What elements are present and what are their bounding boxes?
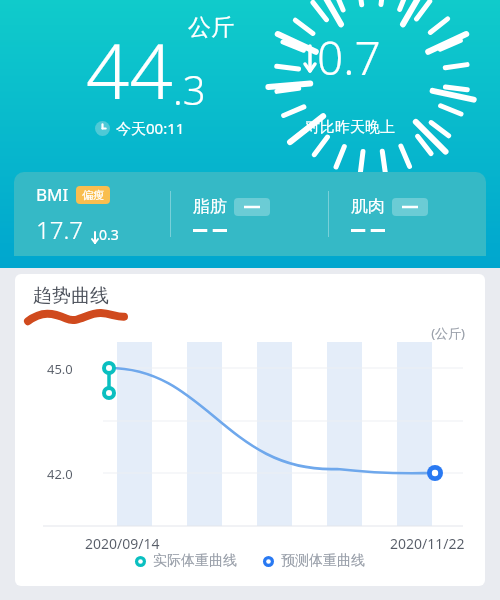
button[interactable]: BMI [14, 172, 486, 256]
staticText: 0.3 [99, 225, 119, 244]
staticText: 45.0 [47, 360, 73, 378]
staticText: 偏瘦 [82, 188, 104, 202]
staticText: 2020/11/22 [390, 534, 465, 552]
staticText: 今天00:11 [116, 118, 185, 138]
staticText: 对比昨天晚上 [305, 118, 395, 137]
staticText: 预测体重曲线 [281, 552, 365, 570]
staticText: 17.7 [36, 213, 83, 246]
staticText: 实际体重曲线 [153, 552, 237, 570]
staticText: 44 [86, 18, 173, 122]
staticText: 脂肪 [193, 196, 227, 217]
staticText: BMI [36, 183, 69, 206]
button[interactable]: 预测体重曲线 [263, 552, 365, 570]
button[interactable]: 实际体重曲线 [135, 552, 237, 570]
staticText: 0.7 [317, 26, 381, 89]
staticText: 肌肉 [351, 196, 385, 217]
staticText: .3 [173, 62, 206, 116]
button[interactable]: 趋势曲线 [15, 274, 485, 586]
staticText: 趋势曲线 [33, 284, 109, 308]
staticText: (公斤) [15, 324, 465, 342]
staticText: 公斤 [188, 13, 234, 42]
staticText: 42.0 [47, 465, 73, 483]
staticText: 2020/09/14 [85, 534, 160, 552]
